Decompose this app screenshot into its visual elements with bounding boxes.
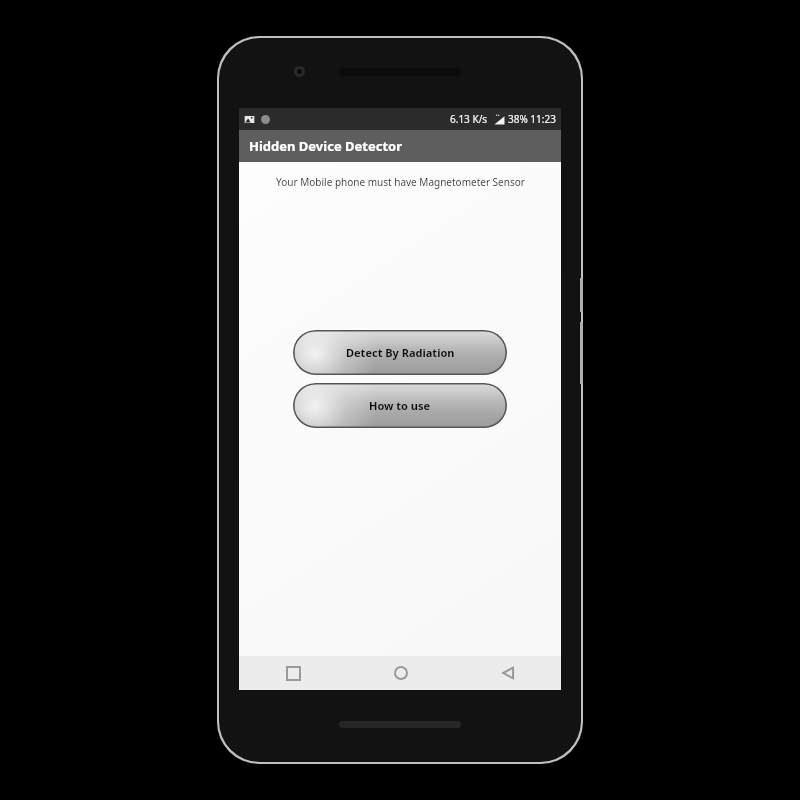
staticText: Hidden Device Detector — [249, 137, 402, 155]
staticText: Your Mobile phone must have Magnetometer… — [276, 175, 525, 189]
staticText: How to use — [369, 398, 431, 413]
staticText: 6.13 K/s — [450, 112, 488, 126]
button[interactable]: Home — [347, 656, 454, 690]
button[interactable]: Back — [454, 656, 561, 690]
button[interactable]: Detect By Radiation — [293, 330, 507, 375]
button[interactable]: How to use — [293, 383, 507, 428]
staticText: Detect By Radiation — [346, 345, 455, 360]
staticText: 38% 11:23 — [508, 112, 556, 126]
button[interactable]: Recent apps — [239, 656, 347, 690]
